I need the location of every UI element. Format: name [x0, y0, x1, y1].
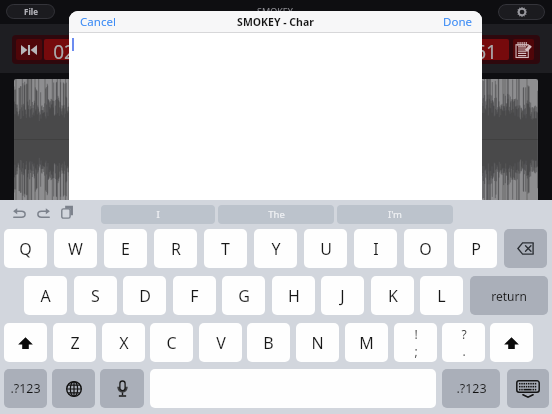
button[interactable]: Backspace — [504, 229, 547, 268]
staticText: I — [156, 208, 160, 221]
staticText: Done — [443, 14, 472, 30]
staticText: V — [216, 332, 226, 354]
button[interactable]: B — [247, 323, 290, 362]
staticText: I'm — [388, 208, 402, 221]
button[interactable]: I — [101, 205, 215, 224]
button[interactable]: S — [74, 276, 117, 315]
staticText: K — [388, 285, 398, 307]
staticText: E — [121, 238, 130, 260]
staticText: return — [491, 288, 527, 304]
staticText: B — [263, 332, 274, 354]
button[interactable]: Copy — [61, 205, 74, 219]
button[interactable]: K — [371, 276, 414, 315]
button[interactable]: ? — [442, 323, 485, 362]
staticText: File — [24, 6, 38, 17]
staticText: D — [139, 285, 151, 307]
staticText: L — [437, 285, 446, 307]
button[interactable]: O — [404, 229, 447, 268]
button[interactable]: .?123 — [442, 369, 500, 408]
staticText: Z — [70, 332, 80, 354]
staticText: W — [68, 238, 83, 260]
staticText: 02 — [53, 39, 75, 60]
staticText: ? — [461, 326, 467, 342]
button[interactable]: X — [102, 323, 145, 362]
staticText: X — [119, 332, 129, 354]
staticText: .?123 — [10, 380, 41, 397]
button[interactable]: D — [123, 276, 166, 315]
button[interactable]: P — [454, 229, 497, 268]
staticText: S — [91, 285, 100, 307]
button[interactable]: M — [345, 323, 388, 362]
staticText: O — [419, 238, 432, 260]
button[interactable]: The — [218, 205, 334, 224]
button[interactable]: W — [54, 229, 97, 268]
button[interactable]: E — [104, 229, 147, 268]
staticText: I — [373, 238, 379, 260]
button[interactable]: Cancel — [80, 11, 116, 33]
staticText: H — [288, 285, 300, 307]
staticText: SMOKEY - Char — [237, 15, 314, 29]
button[interactable]: Settings — [498, 4, 545, 20]
button[interactable]: Done — [443, 11, 472, 33]
staticText: G — [238, 285, 250, 307]
staticText: SMOKEY — [257, 5, 293, 17]
button[interactable]: Z — [53, 323, 96, 362]
button[interactable]: Y — [254, 229, 297, 268]
button[interactable]: I'm — [337, 205, 453, 224]
button[interactable]: Q — [4, 229, 47, 268]
button[interactable]: A — [24, 276, 67, 315]
staticText: ; — [414, 343, 418, 359]
button[interactable]: H — [272, 276, 315, 315]
staticText: 61 — [475, 39, 497, 60]
staticText: J — [340, 285, 345, 307]
button[interactable]: Play — [16, 39, 42, 60]
button[interactable]: J — [321, 276, 364, 315]
staticText: C — [166, 332, 177, 354]
staticText: ! — [414, 326, 418, 342]
button[interactable]: Dictation — [100, 369, 144, 408]
button[interactable]: T — [204, 229, 247, 268]
button[interactable]: return — [470, 276, 548, 315]
staticText: . — [462, 343, 466, 359]
button[interactable]: Change keyboard — [52, 369, 95, 408]
button[interactable]: F — [173, 276, 216, 315]
staticText: F — [190, 285, 199, 307]
staticText: M — [359, 332, 374, 354]
button[interactable]: Notes — [513, 39, 534, 60]
staticText: Y — [271, 238, 281, 260]
staticText: T — [221, 238, 230, 260]
button[interactable]: N — [296, 323, 339, 362]
button[interactable]: Undo — [13, 206, 26, 219]
button[interactable]: I — [354, 229, 397, 268]
button[interactable]: File — [6, 4, 55, 19]
button[interactable]: U — [304, 229, 347, 268]
staticText: Cancel — [80, 14, 116, 30]
button[interactable]: R — [154, 229, 197, 268]
button[interactable]: Shift — [490, 323, 533, 362]
button[interactable]: G — [222, 276, 265, 315]
staticText: Q — [19, 238, 32, 260]
staticText: U — [320, 238, 332, 260]
staticText: A — [40, 285, 51, 307]
button[interactable]: V — [199, 323, 242, 362]
staticText: R — [171, 238, 181, 260]
button[interactable]: ! — [394, 323, 437, 362]
button[interactable]: Redo — [37, 206, 50, 219]
button[interactable]: Shift — [4, 323, 47, 362]
button[interactable]: Hide keyboard — [507, 369, 549, 408]
button[interactable]: L — [420, 276, 463, 315]
staticText: P — [471, 238, 481, 260]
button[interactable]: .?123 — [4, 369, 47, 408]
staticText: .?123 — [456, 380, 487, 397]
button[interactable]: C — [150, 323, 193, 362]
staticText: N — [311, 332, 324, 354]
staticText: The — [268, 208, 285, 221]
